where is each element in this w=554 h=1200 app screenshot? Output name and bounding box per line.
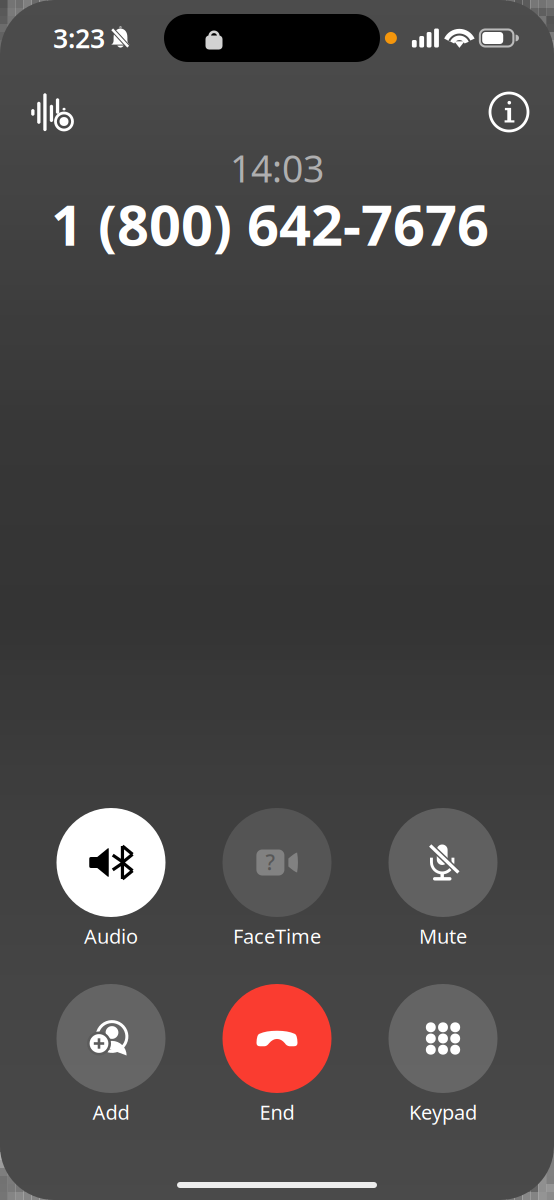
button[interactable]: ?	[194, 808, 360, 949]
staticText: 1 (800) 642-7676	[51, 187, 489, 261]
staticText: Audio	[84, 923, 138, 949]
staticText: ?	[265, 848, 275, 876]
staticText: End	[259, 1099, 294, 1125]
staticText: 14:03	[230, 143, 324, 193]
button[interactable]: Keypad	[360, 984, 526, 1125]
button[interactable]: Mute	[360, 808, 526, 949]
staticText: FaceTime	[233, 923, 321, 949]
button[interactable]: Call info	[473, 81, 533, 141]
staticText: Mute	[419, 923, 467, 949]
staticText: 3:23	[53, 20, 105, 56]
staticText: Keypad	[409, 1099, 477, 1125]
button[interactable]: End	[194, 984, 360, 1125]
button[interactable]: Call recording	[21, 81, 81, 141]
button[interactable]: Add	[28, 984, 194, 1125]
staticText: Add	[92, 1099, 129, 1125]
button[interactable]: Audio	[28, 808, 194, 949]
